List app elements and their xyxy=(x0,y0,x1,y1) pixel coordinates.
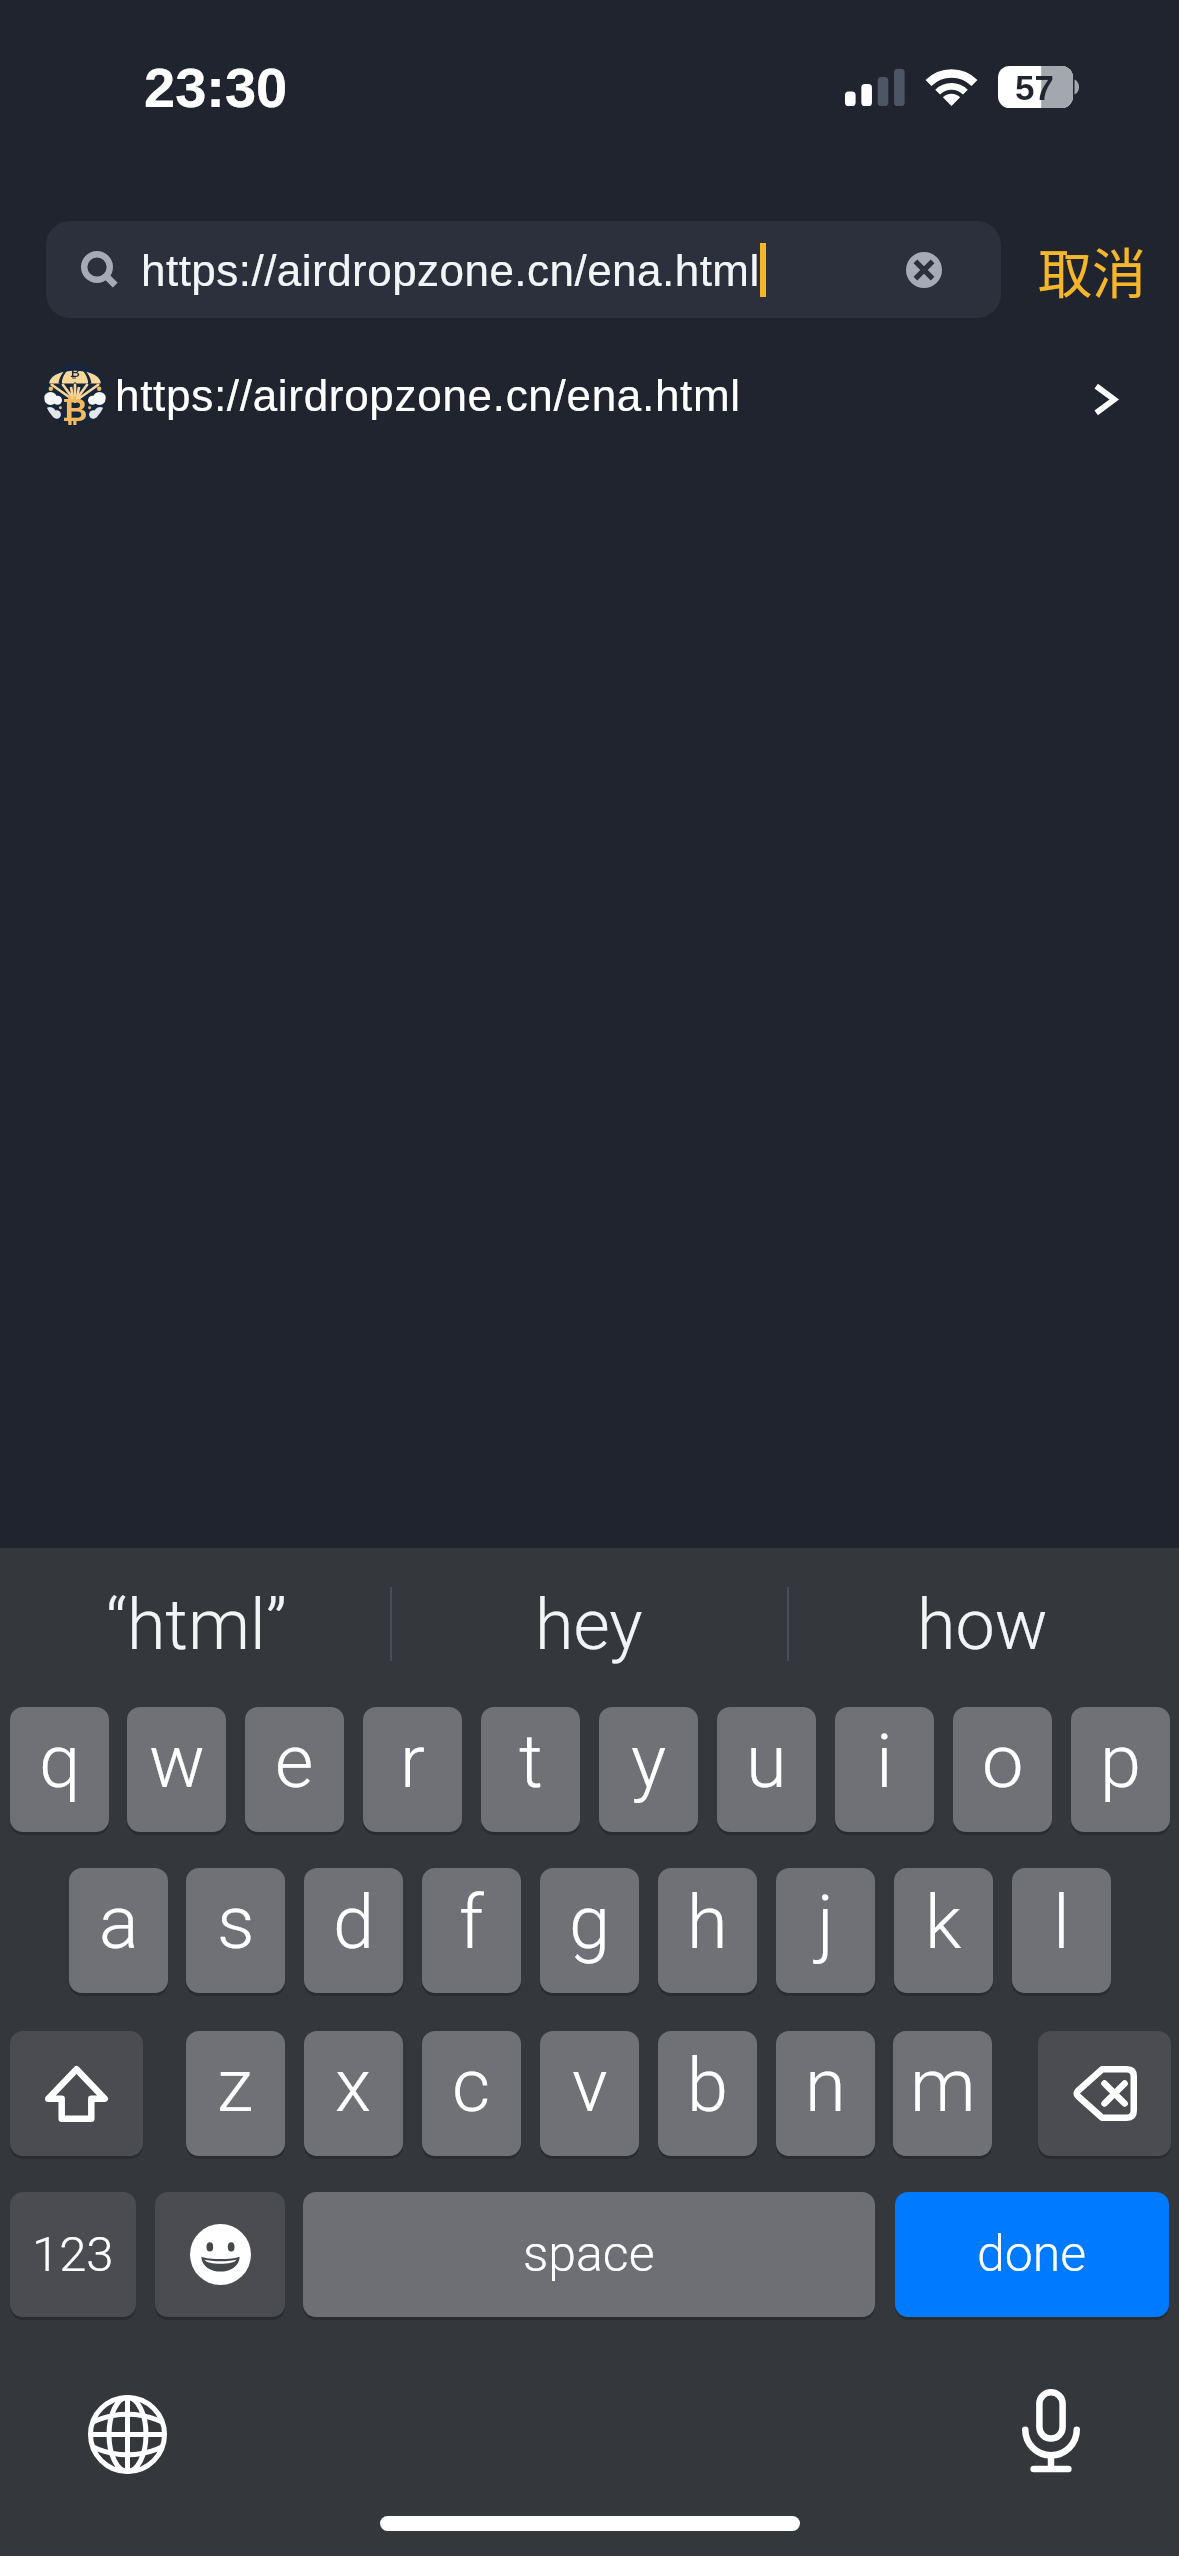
button[interactable]: o xyxy=(953,1707,1052,1832)
button[interactable]: z xyxy=(186,2031,285,2156)
button[interactable]: p xyxy=(1071,1707,1170,1832)
staticText: p xyxy=(1100,1718,1142,1805)
staticText: a xyxy=(99,1879,139,1966)
staticText: 23:30 xyxy=(144,56,288,119)
button[interactable]: Backspace xyxy=(1038,2031,1171,2156)
button[interactable]: ₿ xyxy=(0,348,1179,448)
other: Open suggestion xyxy=(1095,385,1115,414)
button[interactable]: u xyxy=(717,1707,816,1832)
button[interactable]: 取消 xyxy=(1036,231,1148,307)
staticText: w xyxy=(149,1718,205,1805)
button[interactable]: k xyxy=(894,1868,993,1993)
staticText: h xyxy=(687,1879,728,1966)
staticText: done xyxy=(977,2225,1087,2284)
button[interactable]: m xyxy=(893,2031,992,2156)
button[interactable]: f xyxy=(422,1868,521,1993)
staticText: e xyxy=(275,1718,314,1805)
button[interactable]: hey xyxy=(394,1548,784,1667)
button[interactable]: j xyxy=(776,1868,875,1993)
staticText: space xyxy=(523,2225,655,2284)
staticText: v xyxy=(572,2042,608,2129)
button[interactable]: x xyxy=(304,2031,403,2156)
staticText: u xyxy=(746,1718,787,1805)
button[interactable]: g xyxy=(540,1868,639,1993)
button[interactable]: s xyxy=(186,1868,285,1993)
button[interactable]: c xyxy=(422,2031,521,2156)
staticText: q xyxy=(39,1718,81,1805)
button[interactable]: space xyxy=(303,2192,875,2317)
staticText: x xyxy=(335,2042,372,2129)
button[interactable]: b xyxy=(658,2031,757,2156)
staticText: d xyxy=(333,1879,375,1966)
staticText: i xyxy=(876,1718,893,1805)
button[interactable]: Clear text xyxy=(906,252,942,288)
staticText: k xyxy=(925,1879,962,1966)
staticText: y xyxy=(631,1718,667,1805)
staticText: n xyxy=(805,2042,846,2129)
staticText: j xyxy=(817,1879,834,1966)
button[interactable]: how xyxy=(787,1548,1177,1667)
button[interactable]: 123 xyxy=(10,2192,136,2317)
staticText: f xyxy=(459,1879,484,1966)
staticText: o xyxy=(982,1718,1024,1805)
staticText: g xyxy=(569,1879,611,1966)
button[interactable]: done xyxy=(895,2192,1169,2317)
staticText: b xyxy=(687,2042,729,2129)
button[interactable]: q xyxy=(10,1707,109,1832)
staticText: “html” xyxy=(106,1584,287,1666)
button[interactable]: e xyxy=(245,1707,344,1832)
staticText: m xyxy=(910,2042,976,2129)
button[interactable]: Shift xyxy=(10,2031,143,2156)
button[interactable]: r xyxy=(363,1707,462,1832)
staticText: ₿ xyxy=(70,366,80,379)
staticText: https://airdropzone.cn/ena.html xyxy=(115,371,741,420)
staticText: 123 xyxy=(32,2226,114,2283)
button[interactable]: i xyxy=(835,1707,934,1832)
button[interactable]: a xyxy=(69,1868,168,1993)
staticText: l xyxy=(1053,1879,1070,1966)
button[interactable]: d xyxy=(304,1868,403,1993)
staticText: s xyxy=(217,1879,255,1966)
button[interactable]: Search xyxy=(46,221,1001,318)
button[interactable]: y xyxy=(599,1707,698,1832)
staticText: ₿ xyxy=(62,393,88,428)
staticText: c xyxy=(452,2042,491,2129)
staticText: hey xyxy=(535,1584,643,1666)
staticText: z xyxy=(217,2042,254,2129)
staticText: 57 xyxy=(1015,68,1054,107)
button[interactable]: l xyxy=(1012,1868,1111,1993)
button[interactable]: v xyxy=(540,2031,639,2156)
button[interactable]: Next keyboard xyxy=(88,2395,167,2474)
button[interactable]: w xyxy=(127,1707,226,1832)
button[interactable]: t xyxy=(481,1707,580,1832)
other: Search xyxy=(81,251,119,289)
staticText: https://airdropzone.cn/ena.html xyxy=(141,246,760,295)
staticText: t xyxy=(519,1718,543,1805)
staticText: 取消 xyxy=(1038,231,1146,307)
button[interactable]: “html” xyxy=(1,1548,391,1667)
button[interactable]: h xyxy=(658,1868,757,1993)
staticText: how xyxy=(917,1584,1048,1666)
button[interactable]: Dictation xyxy=(1022,2389,1080,2474)
staticText: r xyxy=(400,1718,425,1805)
button[interactable]: Emoji xyxy=(155,2192,285,2317)
button[interactable]: n xyxy=(776,2031,875,2156)
